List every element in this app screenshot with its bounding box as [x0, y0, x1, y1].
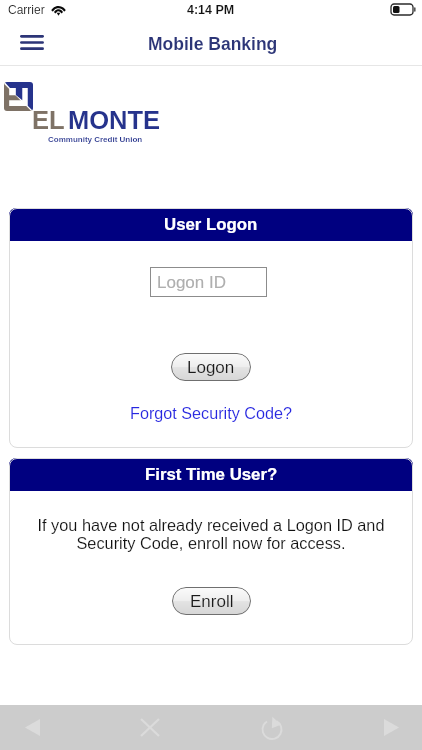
- staticText: If you have not already received a Logon…: [29, 516, 393, 552]
- button[interactable]: Logon: [171, 353, 251, 381]
- button[interactable]: Back: [9, 705, 55, 750]
- button[interactable]: Reload: [249, 705, 295, 750]
- button[interactable]: Logon ID: [150, 267, 267, 297]
- button[interactable]: Forward: [368, 705, 414, 750]
- staticText: Enroll: [190, 592, 234, 611]
- staticText: Mobile Banking: [148, 34, 278, 54]
- staticText: MONTE: [68, 106, 161, 134]
- staticText: Logon: [187, 358, 235, 377]
- staticText: Logon ID: [157, 273, 226, 292]
- staticText: 4:14 PM: [187, 3, 235, 17]
- button[interactable]: Enroll: [172, 587, 251, 615]
- button[interactable]: Menu: [10, 27, 54, 57]
- staticText: Forgot Security Code?: [130, 404, 292, 422]
- button[interactable]: Forgot Security Code?: [128, 402, 294, 424]
- staticText: First Time User?: [145, 465, 278, 484]
- staticText: EL: [32, 106, 65, 134]
- staticText: Community Credit Union: [48, 135, 143, 144]
- staticText: User Logon: [164, 215, 258, 234]
- staticText: Carrier: [8, 3, 45, 16]
